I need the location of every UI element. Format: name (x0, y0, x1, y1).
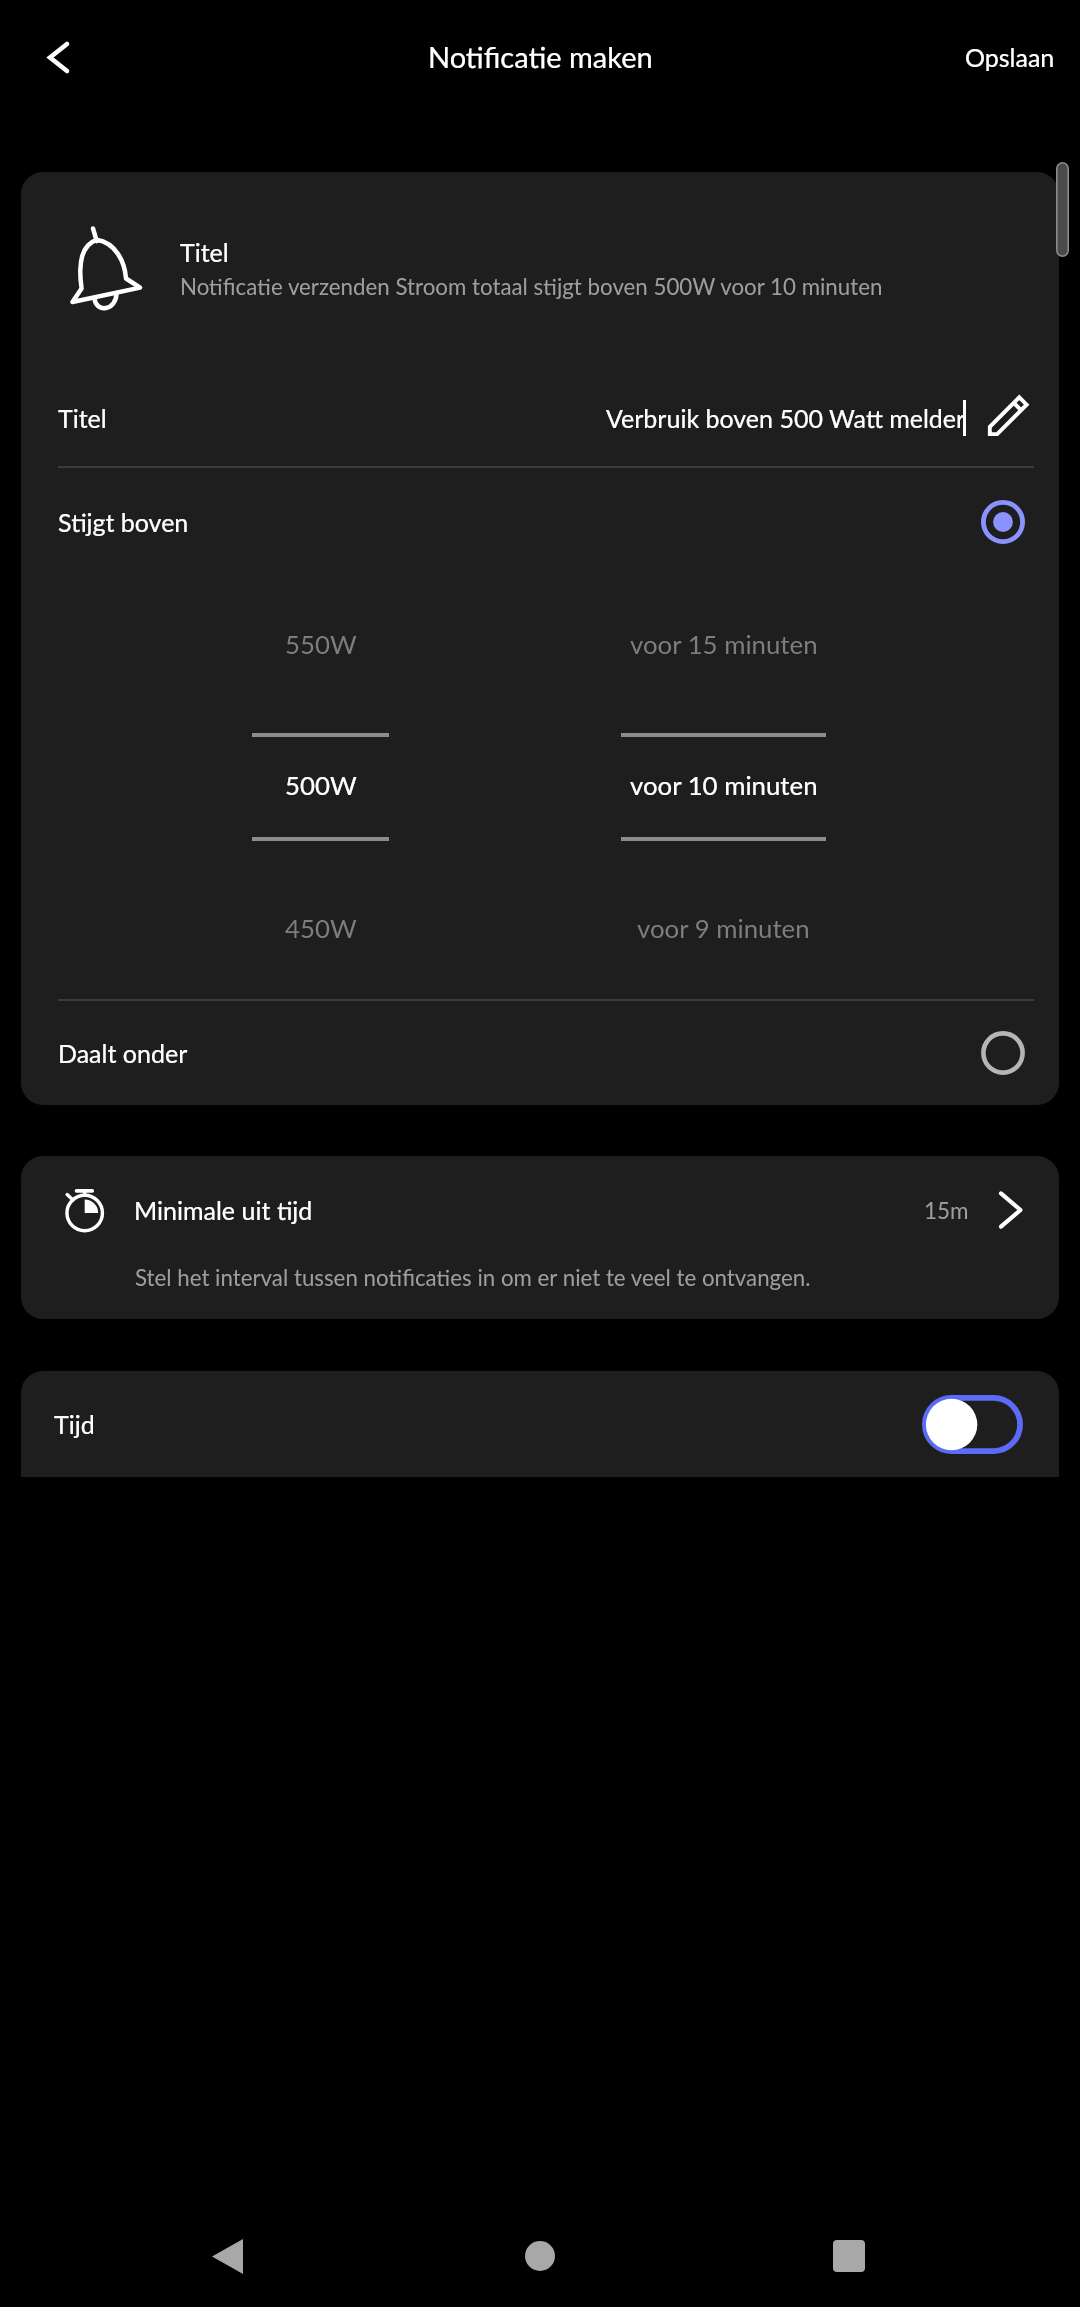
staticText: Minimale uit tijd (134, 1195, 313, 1225)
staticText: voor 15 minuten (630, 629, 818, 660)
staticText: Titel (180, 237, 229, 267)
button[interactable]: Terug (20, 19, 96, 95)
button[interactable]: Recente apps (773, 2205, 925, 2307)
staticText: Verbruik boven 500 Watt melder (606, 403, 966, 433)
staticText: Stijgt boven (58, 507, 189, 537)
staticText: Opslaan (965, 42, 1055, 72)
staticText: Tijd (54, 1409, 95, 1439)
button[interactable]: Tijd (21, 1371, 1059, 1477)
other: Bewerken (985, 393, 1031, 439)
button[interactable]: Daalt onder (21, 1001, 1059, 1105)
button[interactable]: Start (464, 2205, 616, 2307)
staticText: Notificatie maken (428, 39, 653, 74)
button[interactable]: Opslaan (943, 26, 1080, 88)
staticText: 450W (285, 913, 357, 944)
staticText: Stel het interval tussen notificaties in… (135, 1264, 811, 1291)
staticText: Notificatie verzenden Stroom totaal stij… (180, 273, 883, 300)
button[interactable]: Titel (21, 374, 1059, 461)
staticText: Daalt onder (58, 1038, 188, 1068)
staticText: Titel (58, 403, 107, 433)
button[interactable]: Terug (151, 2205, 303, 2307)
staticText: 550W (285, 629, 357, 660)
staticText: 15m (924, 1197, 969, 1224)
button[interactable]: Minimale uit tijd (21, 1156, 1059, 1319)
staticText: voor 10 minuten (630, 770, 818, 801)
button[interactable]: Titel (21, 172, 1059, 374)
staticText: 500W (285, 770, 357, 801)
staticText: voor 9 minuten (637, 913, 810, 944)
button[interactable]: Stijgt boven (21, 468, 1059, 575)
